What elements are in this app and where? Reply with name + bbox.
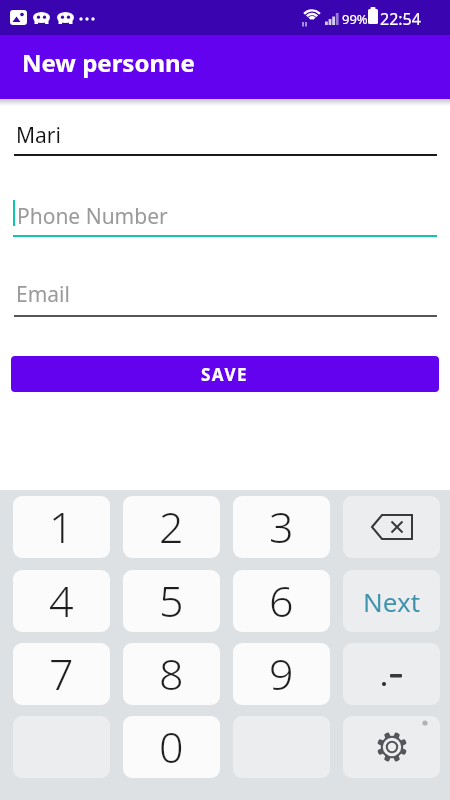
staticText: 3 [269, 497, 294, 556]
staticText: Phone Number [17, 202, 168, 231]
staticText: New personne [22, 46, 195, 79]
button[interactable] [343, 496, 440, 558]
button[interactable]: 4 [13, 570, 110, 632]
staticText: 9 [269, 644, 294, 703]
staticText: 22:54 [380, 8, 421, 30]
button[interactable]: 5 [123, 570, 220, 632]
staticText: Email [16, 280, 70, 309]
button[interactable]: 8 [123, 643, 220, 705]
button[interactable]: 0 [123, 716, 220, 778]
staticText: 1 [49, 497, 74, 556]
staticText: 6 [269, 571, 294, 630]
staticText: 5 [159, 571, 184, 630]
button[interactable]: New personne [0, 35, 450, 99]
button[interactable]: 3 [233, 496, 330, 558]
button[interactable]: 6 [233, 570, 330, 632]
button[interactable]: 9 [233, 643, 330, 705]
button[interactable]: SAVE [11, 356, 439, 392]
button[interactable]: Next [343, 570, 440, 632]
staticText: 99% [342, 10, 368, 28]
staticText: Next [363, 584, 421, 619]
button[interactable]: 2 [123, 496, 220, 558]
staticText: SAVE [201, 363, 249, 386]
button[interactable]: 7 [13, 643, 110, 705]
staticText: 0 [159, 717, 184, 776]
button[interactable] [343, 716, 440, 778]
button[interactable]: 1 [13, 496, 110, 558]
staticText: 2 [159, 497, 184, 556]
staticText: 8 [159, 644, 184, 703]
staticText: Mari [16, 121, 61, 150]
staticText: 4 [49, 571, 74, 630]
staticText: 7 [49, 644, 74, 703]
button[interactable] [343, 643, 440, 705]
